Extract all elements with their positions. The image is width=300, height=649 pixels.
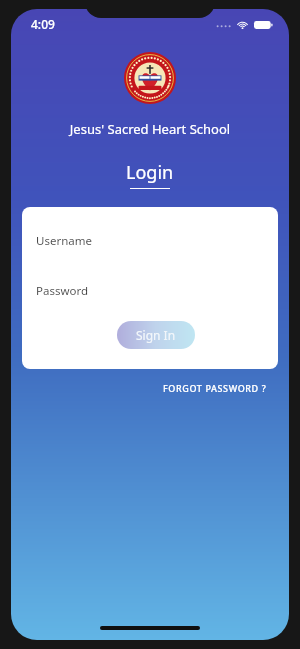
button[interactable]: Username: [36, 233, 264, 249]
staticText: Username: [36, 233, 92, 249]
staticText: Jesus' Sacred Heart School: [11, 120, 289, 138]
staticText: FORGOT PASSWORD ?: [163, 382, 267, 394]
staticText: Sign In: [136, 327, 176, 343]
button[interactable]: Password: [36, 283, 264, 299]
button[interactable]: FORGOT PASSWORD ?: [161, 380, 269, 396]
staticText: Password: [36, 283, 89, 299]
button[interactable]: Sign In: [117, 321, 195, 349]
staticText: 4:09: [31, 16, 55, 32]
other: School logo: [124, 52, 176, 104]
staticText: Login: [126, 160, 174, 185]
